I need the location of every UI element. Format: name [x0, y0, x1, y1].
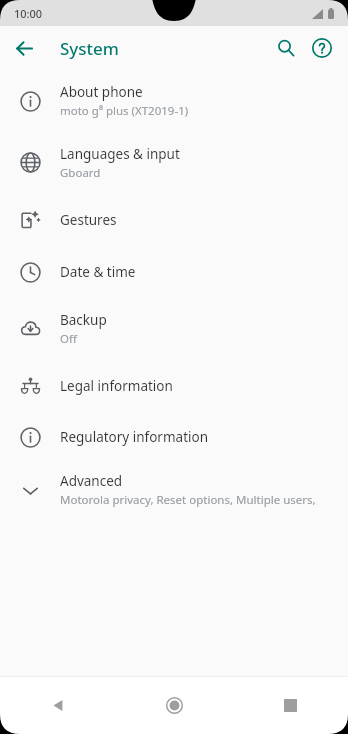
button[interactable]: Recent apps	[232, 676, 348, 734]
button[interactable]: Date & time	[0, 246, 348, 298]
staticText: Gestures	[60, 211, 117, 229]
button[interactable]: Back	[8, 32, 40, 64]
staticText: Languages & input	[60, 145, 180, 163]
staticText: Date & time	[60, 263, 136, 281]
button[interactable]: Regulatory information	[0, 413, 348, 461]
staticText: moto g⁸ plus (XT2019-1)	[60, 103, 189, 119]
button[interactable]: Gestures	[0, 193, 348, 246]
staticText: System	[60, 37, 119, 60]
button[interactable]: Legal information	[0, 359, 348, 413]
button[interactable]: Back	[0, 676, 116, 734]
button[interactable]: Home	[116, 676, 232, 734]
staticText: Legal information	[60, 377, 173, 395]
staticText: Advanced	[60, 472, 123, 490]
button[interactable]: Backup	[0, 298, 348, 359]
staticText: Motorola privacy, Reset options, Multipl…	[60, 492, 338, 508]
button[interactable]: About phone	[0, 70, 348, 132]
staticText: Regulatory information	[60, 428, 209, 446]
button[interactable]: Languages & input	[0, 132, 348, 193]
button[interactable]: Advanced	[0, 461, 348, 519]
staticText: 10:00	[14, 6, 43, 21]
button[interactable]: Search	[268, 30, 304, 66]
staticText: Gboard	[60, 165, 101, 181]
button[interactable]: Help	[304, 30, 340, 66]
staticText: Backup	[60, 311, 107, 329]
staticText: About phone	[60, 83, 143, 101]
staticText: Off	[60, 331, 77, 347]
